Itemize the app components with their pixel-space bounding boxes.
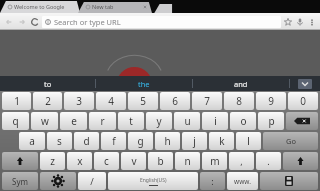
staticText: / — [90, 175, 94, 188]
staticText: . — [267, 155, 270, 167]
button[interactable]: 9 — [256, 92, 286, 110]
button[interactable]: More suggestions — [290, 76, 320, 91]
staticText: 5 — [140, 94, 146, 108]
button[interactable]: d — [74, 132, 99, 150]
staticText: h — [164, 134, 171, 148]
staticText: i — [214, 114, 217, 128]
button[interactable]: x — [67, 152, 92, 170]
button[interactable]: Search or type URL — [42, 16, 281, 28]
button[interactable]: Bookmark — [281, 15, 294, 28]
staticText: m — [210, 154, 220, 168]
button[interactable]: h — [155, 132, 180, 150]
button[interactable]: y — [146, 112, 172, 130]
button[interactable]: j — [182, 132, 207, 150]
staticText: c — [104, 154, 109, 168]
staticText: y — [156, 114, 162, 128]
button[interactable]: i — [202, 112, 228, 130]
staticText: v — [131, 154, 137, 168]
staticText: t — [129, 114, 133, 128]
button[interactable]: Back — [2, 15, 15, 28]
button[interactable]: www. — [227, 172, 258, 190]
button[interactable]: b — [148, 152, 173, 170]
button[interactable]: t — [118, 112, 144, 130]
staticText: x — [77, 154, 83, 168]
staticText: j — [193, 134, 196, 148]
button[interactable]: 2 — [33, 92, 62, 110]
button[interactable]: 5 — [128, 92, 158, 110]
button[interactable]: p — [258, 112, 284, 130]
button[interactable]: m — [202, 152, 227, 170]
button[interactable]: 8 — [224, 92, 254, 110]
button[interactable]: , — [229, 152, 254, 170]
button[interactable]: 6 — [160, 92, 190, 110]
staticText: Search or type URL — [54, 17, 121, 27]
button[interactable]: g — [128, 132, 153, 150]
staticText: : — [211, 175, 214, 187]
staticText: English(US) — [140, 177, 167, 184]
button[interactable]: a — [19, 132, 45, 150]
staticText: r — [100, 114, 105, 128]
staticText: d — [83, 134, 90, 148]
staticText: w — [41, 114, 49, 128]
button[interactable]: . — [256, 152, 281, 170]
button[interactable]: the — [96, 76, 192, 91]
button[interactable]: Menu — [306, 16, 318, 28]
staticText: q — [12, 114, 19, 128]
button[interactable]: e — [60, 112, 87, 130]
button[interactable]: z — [40, 152, 65, 170]
button[interactable]: Shift — [283, 152, 318, 170]
button[interactable]: Welcome to Google Chro — [0, 0, 80, 13]
button[interactable]: 1 — [2, 92, 31, 110]
button[interactable]: Forward — [15, 15, 28, 28]
button[interactable]: v — [121, 152, 146, 170]
staticText: New tab — [92, 3, 114, 10]
button[interactable]: l — [236, 132, 261, 150]
button[interactable]: Enter — [260, 172, 318, 190]
button[interactable]: Sym — [2, 172, 38, 190]
staticText: k — [219, 134, 225, 148]
button[interactable]: r — [89, 112, 116, 130]
button[interactable]: Go — [263, 132, 318, 150]
button[interactable]: 7 — [192, 92, 222, 110]
button[interactable]: f — [101, 132, 126, 150]
button[interactable]: to — [0, 76, 95, 91]
button[interactable]: English(US) — [108, 172, 198, 190]
button[interactable]: Shift — [2, 152, 38, 170]
staticText: a — [29, 134, 35, 148]
button[interactable]: and — [193, 76, 289, 91]
button[interactable]: 4 — [96, 92, 126, 110]
staticText: u — [184, 114, 191, 128]
button[interactable]: 0 — [288, 92, 318, 110]
button[interactable]: Backspace — [286, 112, 318, 130]
button[interactable]: / — [78, 172, 106, 190]
staticText: Welcome to Google Chro — [14, 3, 75, 10]
button[interactable]: New tab — [78, 0, 152, 13]
staticText: l — [247, 134, 250, 148]
button[interactable]: q — [2, 112, 29, 130]
staticText: the — [138, 79, 150, 89]
staticText: b — [157, 154, 164, 168]
button[interactable]: n — [175, 152, 200, 170]
staticText: p — [268, 114, 275, 128]
staticText: f — [112, 134, 116, 148]
button[interactable]: New tab — [150, 0, 174, 13]
button[interactable]: w — [31, 112, 58, 130]
staticText: o — [240, 114, 247, 128]
button[interactable]: c — [94, 152, 119, 170]
staticText: and — [234, 79, 248, 89]
staticText: Sym — [12, 176, 28, 187]
button[interactable]: 3 — [64, 92, 94, 110]
button[interactable]: k — [209, 132, 234, 150]
button[interactable]: Voice search — [294, 16, 306, 28]
staticText: 7 — [204, 94, 210, 108]
button[interactable]: o — [230, 112, 256, 130]
staticText: g — [137, 134, 144, 148]
button[interactable]: s — [47, 132, 72, 150]
button[interactable]: Input settings — [40, 172, 76, 190]
button[interactable]: u — [174, 112, 200, 130]
staticText: z — [50, 154, 55, 168]
button[interactable]: : — [200, 172, 225, 190]
button[interactable]: Reload — [28, 15, 41, 28]
staticText: Go — [286, 136, 296, 146]
staticText: www. — [234, 177, 251, 186]
